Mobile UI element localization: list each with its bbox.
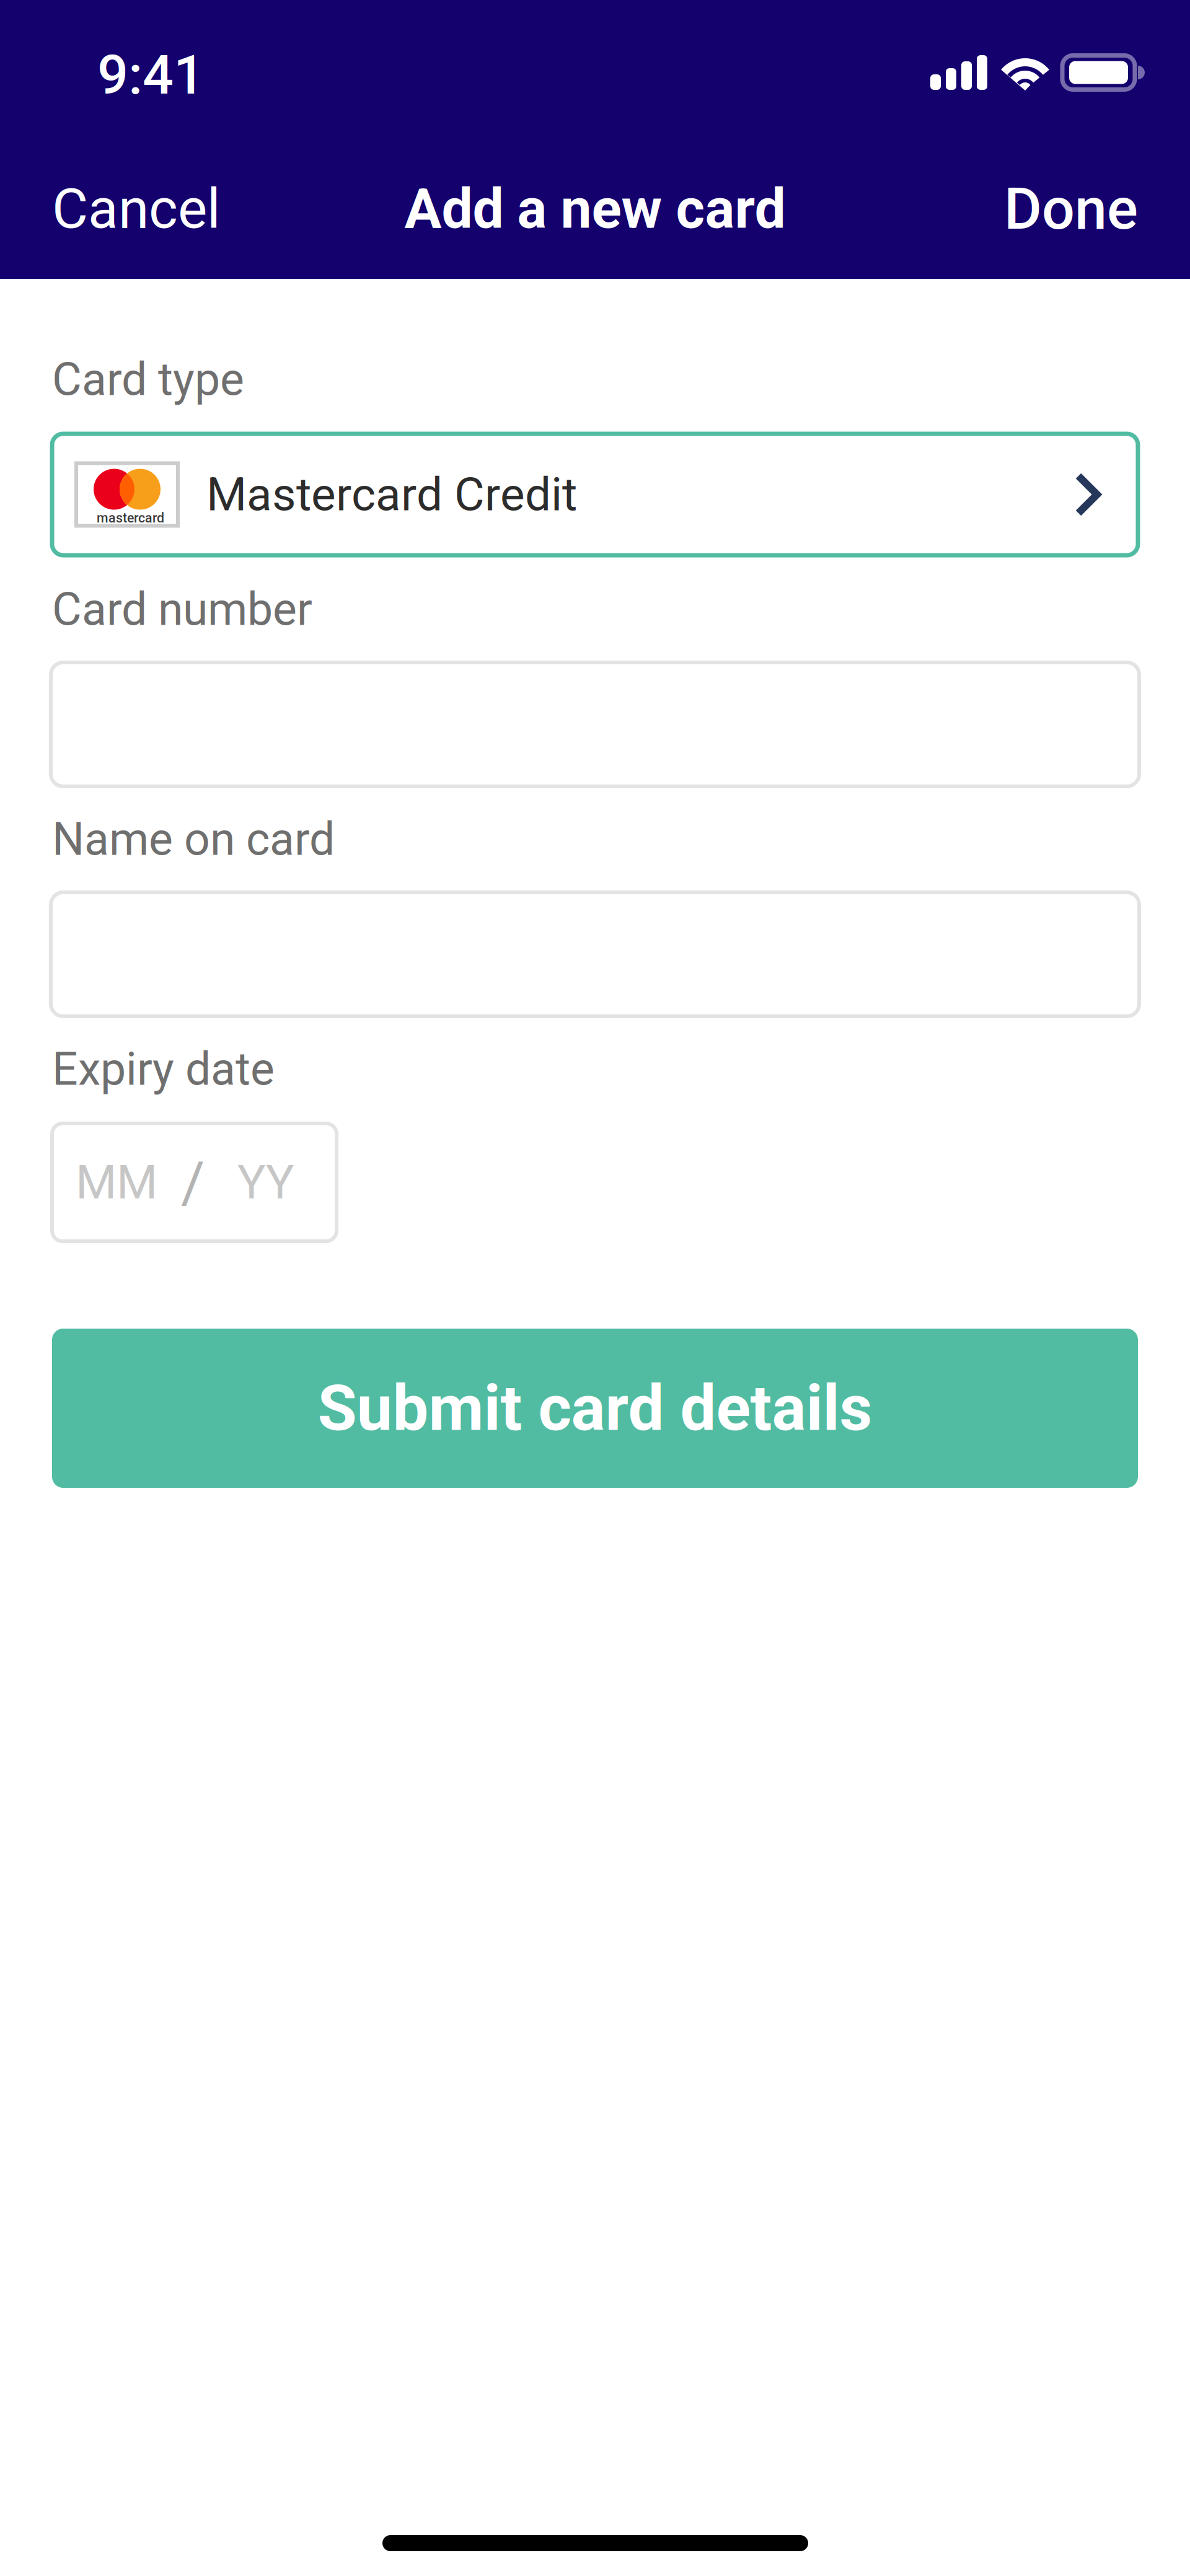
staticText: Name on card <box>52 813 335 866</box>
button[interactable]: Cancel <box>52 172 221 246</box>
staticText: Submit card details <box>318 1371 872 1445</box>
staticText: MM <box>76 1155 157 1210</box>
staticText: 9:41 <box>97 43 205 107</box>
staticText: YY <box>237 1155 294 1210</box>
staticText: Card number <box>52 583 312 636</box>
staticText: mastercard <box>97 510 164 526</box>
staticText: Expiry date <box>52 1043 275 1096</box>
staticText: Mastercard Credit <box>206 467 577 522</box>
button[interactable]: Done <box>1004 172 1138 246</box>
staticText: Card type <box>52 353 244 406</box>
staticText: Done <box>1004 175 1138 243</box>
staticText: Add a new card <box>404 176 786 241</box>
staticText: / <box>181 1148 205 1216</box>
button[interactable]: Submit card details <box>52 1329 1138 1488</box>
staticText: Cancel <box>52 176 221 241</box>
button[interactable]: MM <box>52 1123 337 1241</box>
button[interactable]: mastercard <box>52 434 1138 555</box>
